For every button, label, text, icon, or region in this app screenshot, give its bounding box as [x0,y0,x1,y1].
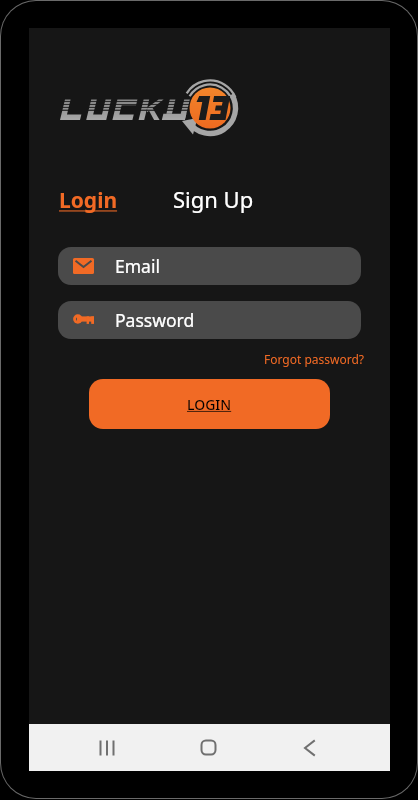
button[interactable]: Sign Up [173,184,254,214]
staticText: Password [115,308,195,332]
button[interactable]: Recent apps [83,724,131,771]
staticText: Sign Up [173,184,254,214]
button[interactable]: Email [58,247,361,285]
button[interactable]: LOGIN [89,379,330,429]
staticText: Forgot password? [264,351,365,367]
staticText: Login [59,186,118,215]
button[interactable]: Login [59,186,118,215]
button[interactable]: Password [58,301,361,339]
button[interactable]: Back [285,724,333,771]
staticText: Email [115,254,160,278]
button[interactable]: Forgot password? [264,351,365,367]
staticText: LOGIN [187,395,232,414]
button[interactable]: Home [184,724,232,771]
